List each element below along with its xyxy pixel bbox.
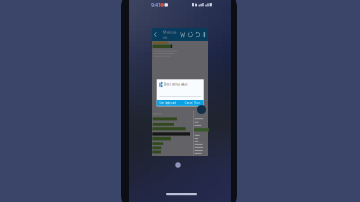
staticText: 9:41 [151,1,161,9]
staticText: Enter string value [164,83,188,86]
staticText: Use keyboard [159,101,176,105]
staticText: Run [194,101,200,105]
staticText: Main.java [163,29,177,40]
staticText: Cancel [184,101,193,105]
